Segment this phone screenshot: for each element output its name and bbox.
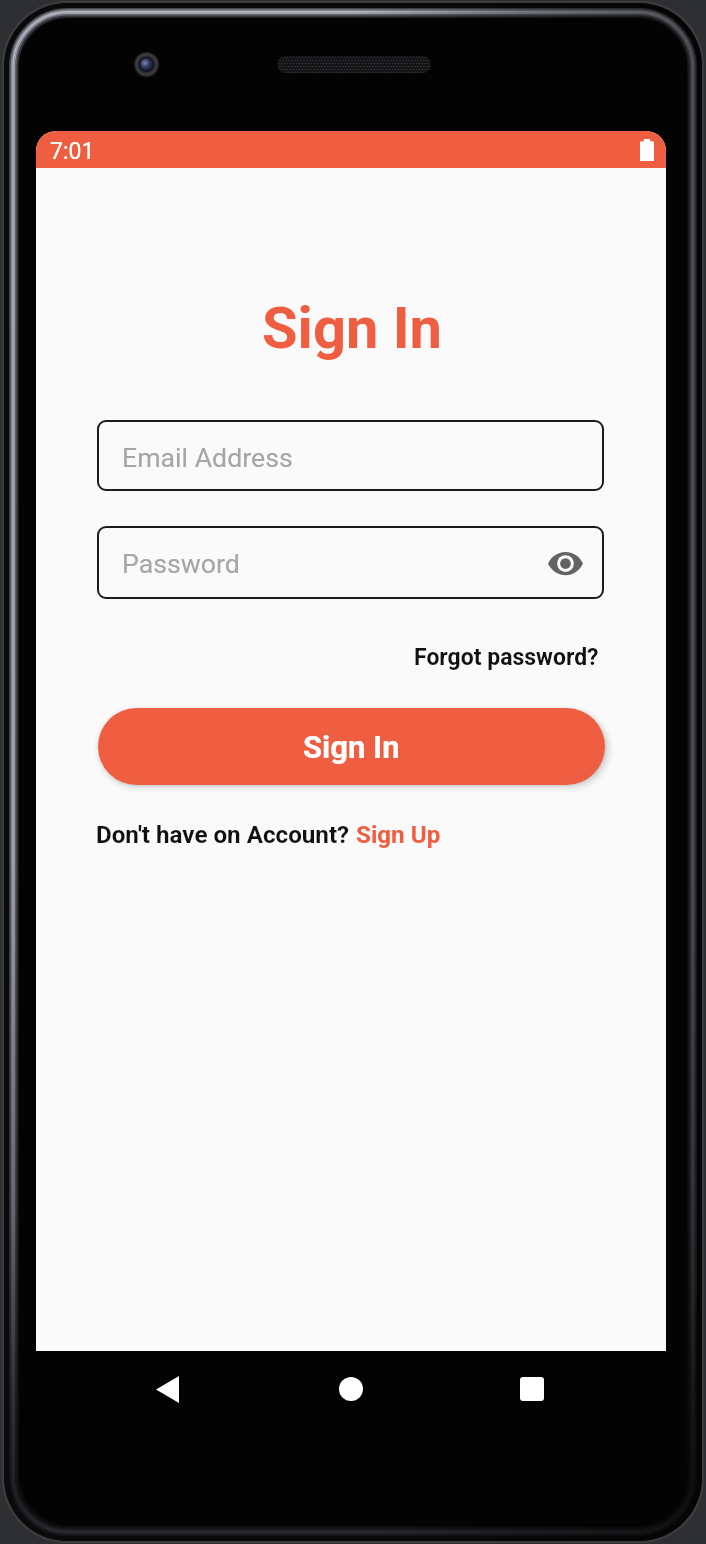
button[interactable]: Recents (496, 1353, 568, 1425)
button[interactable]: Show password (543, 541, 587, 585)
staticText: Email Address (122, 442, 293, 473)
staticText: Sign In (37, 294, 666, 362)
button[interactable]: Sign In (98, 708, 605, 785)
button[interactable]: Forgot password? (384, 644, 599, 671)
staticText: Don't have on Account? (96, 821, 356, 849)
button[interactable]: Sign Up (356, 821, 441, 849)
button[interactable]: Password (97, 526, 604, 599)
button[interactable]: Home (315, 1353, 387, 1425)
button[interactable]: Email Address (97, 420, 604, 491)
staticText: 7:01 (50, 138, 95, 165)
button[interactable]: Back (131, 1353, 203, 1425)
staticText: Password (122, 548, 240, 579)
staticText: Sign In (303, 729, 400, 765)
staticText: Forgot password? (414, 644, 599, 671)
